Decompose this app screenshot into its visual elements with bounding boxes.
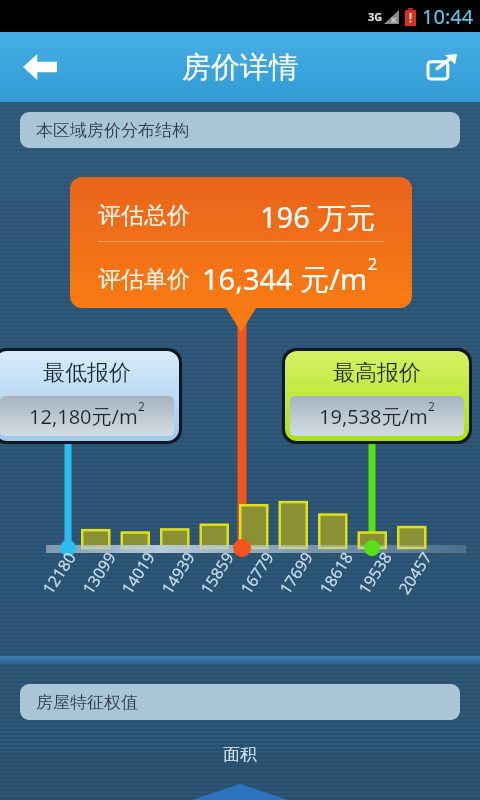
staticText: 19,538元/m	[319, 403, 428, 430]
staticText: 13099	[77, 548, 121, 598]
staticText: 15859	[195, 548, 239, 598]
staticText: 16779	[235, 548, 279, 598]
staticText: 19538	[353, 548, 397, 598]
staticText: 14019	[116, 548, 160, 598]
staticText: 16,344 元/m	[202, 259, 368, 299]
button[interactable]: 房屋特征权值	[20, 684, 460, 720]
button[interactable]: 本区域房价分布结构	[20, 112, 460, 148]
staticText: 本区域房价分布结构	[36, 120, 189, 141]
button[interactable]: Back	[12, 39, 68, 95]
staticText: 12,180元/m	[29, 403, 138, 430]
staticText: 196 万元	[260, 197, 376, 237]
staticText: 17699	[274, 548, 318, 598]
staticText: 18618	[314, 548, 358, 598]
staticText: 10:44	[422, 3, 474, 30]
staticText: 最高报价	[333, 359, 421, 387]
staticText: 12180	[37, 548, 81, 598]
staticText: 14939	[156, 548, 200, 598]
button[interactable]: Share	[414, 39, 470, 95]
staticText: 2	[428, 398, 435, 414]
staticText: 2	[138, 398, 145, 414]
staticText: 最低报价	[43, 359, 131, 387]
button[interactable]: 最高报价	[285, 351, 469, 441]
button[interactable]: 最低报价	[0, 351, 179, 441]
staticText: 2	[368, 253, 378, 275]
button[interactable]: 评估总价	[70, 177, 412, 308]
staticText: 20457	[393, 548, 437, 598]
staticText: 面积	[0, 744, 480, 765]
staticText: 评估总价	[98, 201, 190, 230]
staticText: 3G	[368, 9, 383, 24]
staticText: 房屋特征权值	[36, 692, 138, 713]
staticText: 评估单价	[98, 265, 190, 294]
staticText: 房价详情	[182, 49, 298, 86]
